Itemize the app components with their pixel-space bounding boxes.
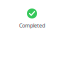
- staticText: Completed: [19, 22, 45, 29]
